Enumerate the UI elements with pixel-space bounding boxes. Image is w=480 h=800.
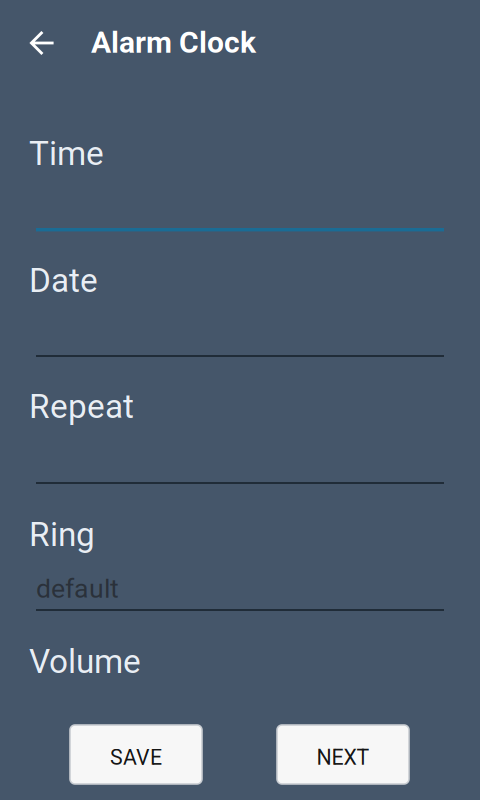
staticText: Volume [29, 642, 141, 681]
button[interactable]: SAVE [70, 725, 202, 784]
button[interactable]: Volume [36, 642, 444, 718]
staticText: SAVE [110, 745, 162, 770]
button[interactable]: Time [36, 134, 444, 252]
button[interactable]: Repeat [36, 387, 444, 505]
staticText: Alarm Clock [91, 25, 256, 60]
staticText: Time [29, 134, 104, 173]
staticText: Ring [29, 515, 95, 554]
staticText: default [36, 573, 119, 604]
button[interactable]: NEXT [277, 725, 409, 784]
staticText: Repeat [29, 387, 134, 426]
button[interactable]: Ring [36, 515, 444, 633]
button[interactable]: Date [36, 261, 444, 379]
button[interactable]: Back [12, 16, 70, 71]
staticText: NEXT [316, 745, 369, 770]
staticText: Date [29, 261, 98, 300]
button[interactable]: Alarm Clock [91, 15, 270, 70]
